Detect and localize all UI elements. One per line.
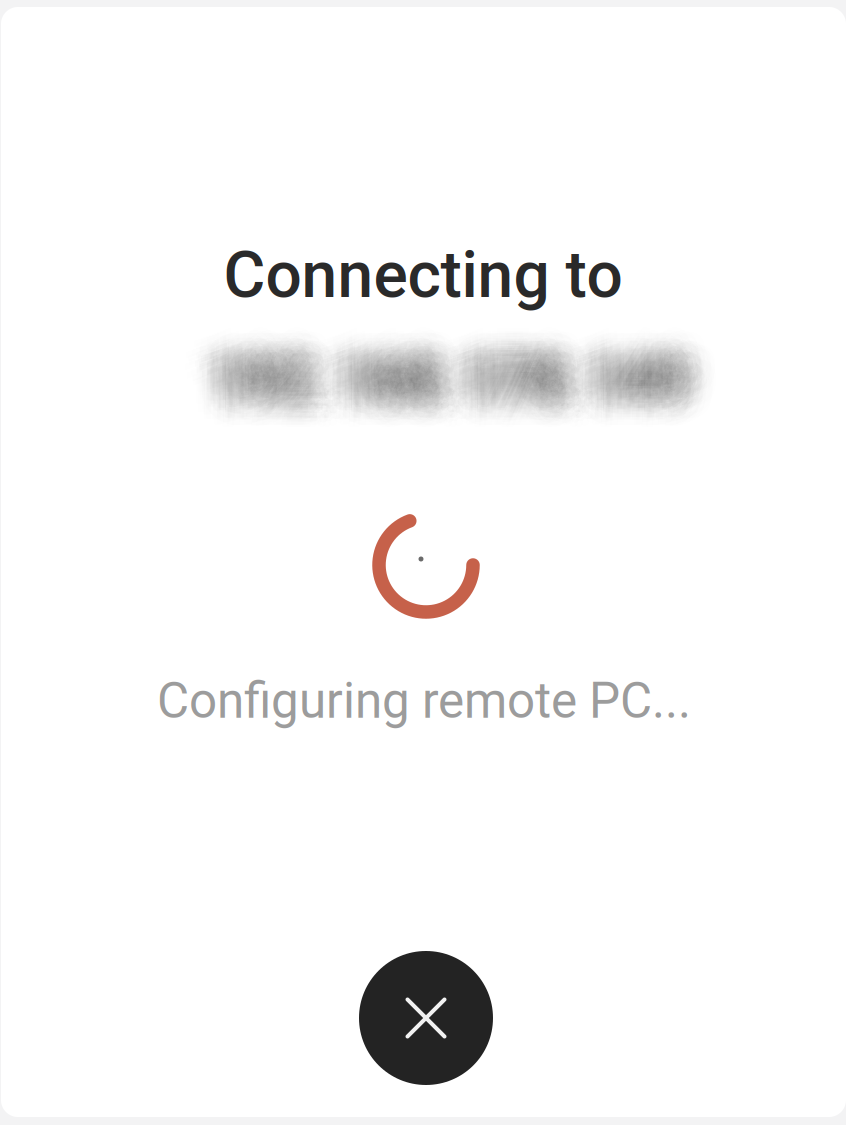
staticText: 192.168.178.149: [187, 355, 673, 430]
staticText: 192.168.178.149: [231, 369, 717, 444]
staticText: 192.168.178.149: [202, 323, 688, 398]
staticText: 192.168.178.149: [205, 333, 691, 408]
staticText: 192.168.178.149: [167, 353, 653, 428]
staticText: 192.168.178.149: [196, 313, 682, 388]
staticText: 192.168.178.149: [190, 341, 676, 416]
staticText: 192.168.178.149: [190, 359, 676, 434]
staticText: 192.168.178.149: [232, 357, 718, 432]
staticText: 192.168.178.149: [228, 378, 714, 453]
staticText: 192.168.178.149: [184, 311, 670, 386]
staticText: 192.168.178.149: [183, 369, 669, 444]
staticText: 192.168.178.149: [208, 337, 694, 412]
staticText: 192.168.178.149: [249, 332, 735, 407]
staticText: 192.168.178.149: [178, 347, 664, 422]
staticText: 192.168.178.149: [169, 331, 655, 406]
staticText: 192.168.178.149: [222, 340, 708, 415]
staticText: 192.168.178.149: [230, 354, 716, 429]
staticText: 192.168.178.149: [226, 308, 712, 383]
staticText: 192.168.178.149: [212, 347, 698, 422]
staticText: 192.168.178.149: [196, 360, 682, 435]
staticText: 192.168.178.149: [202, 341, 688, 416]
staticText: 192.168.178.149: [229, 331, 715, 406]
staticText: 192.168.178.149: [222, 319, 708, 394]
staticText: 192.168.178.149: [194, 344, 680, 419]
staticText: 192.168.178.149: [207, 314, 693, 389]
staticText: 192.168.178.149: [194, 301, 680, 376]
staticText: 192.168.178.149: [229, 359, 715, 434]
button[interactable]: Cancel connection: [359, 951, 493, 1085]
staticText: 192.168.178.149: [216, 320, 702, 395]
staticText: 192.168.178.149: [200, 358, 686, 433]
staticText: 192.168.178.149: [244, 349, 730, 424]
staticText: 192.168.178.149: [195, 373, 681, 448]
staticText: 192.168.178.149: [167, 337, 653, 412]
staticText: 192.168.178.149: [179, 357, 665, 432]
staticText: 192.168.178.149: [203, 371, 689, 446]
staticText: 192.168.178.149: [240, 341, 726, 416]
staticText: 192.168.178.149: [222, 363, 708, 438]
staticText: 192.168.178.149: [203, 380, 689, 455]
staticText: 192.168.178.149: [197, 368, 683, 443]
staticText: 192.168.178.149: [222, 316, 708, 391]
staticText: 192.168.178.149: [206, 306, 692, 381]
staticText: 192.168.178.149: [191, 333, 677, 408]
staticText: 192.168.178.149: [181, 332, 667, 407]
staticText: 192.168.178.149: [182, 327, 668, 402]
staticText: 192.168.178.149: [208, 352, 694, 427]
staticText: 192.168.178.149: [219, 327, 705, 402]
staticText: 192.168.178.149: [220, 359, 706, 434]
staticText: 192.168.178.149: [246, 332, 732, 407]
staticText: 192.168.178.149: [189, 364, 675, 439]
staticText: 192.168.178.149: [231, 321, 717, 396]
staticText: 192.168.178.149: [232, 362, 718, 437]
staticText: 192.168.178.149: [250, 336, 736, 411]
staticText: 192.168.178.149: [224, 350, 710, 425]
staticText: 192.168.178.149: [183, 323, 669, 398]
staticText: 192.168.178.149: [165, 335, 651, 410]
staticText: 192.168.178.149: [172, 343, 658, 418]
staticText: 192.168.178.149: [233, 346, 719, 421]
staticText: 192.168.178.149: [215, 337, 701, 412]
staticText: 192.168.178.149: [225, 338, 711, 413]
staticText: 192.168.178.149: [175, 371, 661, 446]
staticText: 192.168.178.149: [243, 358, 729, 433]
staticText: 192.168.178.149: [229, 363, 715, 438]
staticText: 192.168.178.149: [174, 357, 660, 432]
staticText: 192.168.178.149: [180, 361, 666, 436]
staticText: 192.168.178.149: [243, 320, 729, 395]
staticText: 192.168.178.149: [179, 344, 665, 419]
staticText: 192.168.178.149: [196, 336, 682, 411]
staticText: 192.168.178.149: [185, 318, 671, 393]
staticText: 192.168.178.149: [171, 318, 657, 393]
staticText: 192.168.178.149: [242, 323, 728, 398]
staticText: 192.168.178.149: [188, 321, 674, 396]
staticText: 192.168.178.149: [225, 310, 711, 385]
staticText: 192.168.178.149: [174, 335, 660, 410]
staticText: 192.168.178.149: [210, 310, 696, 385]
staticText: 192.168.178.149: [196, 308, 682, 383]
staticText: 192.168.178.149: [238, 348, 724, 423]
staticText: 192.168.178.149: [189, 378, 675, 453]
staticText: 192.168.178.149: [214, 300, 700, 375]
staticText: 192.168.178.149: [191, 324, 677, 399]
staticText: 192.168.178.149: [194, 341, 680, 416]
staticText: 192.168.178.149: [179, 312, 665, 387]
staticText: 192.168.178.149: [236, 353, 722, 428]
staticText: 192.168.178.149: [185, 312, 671, 387]
staticText: 192.168.178.149: [224, 372, 710, 447]
staticText: 192.168.178.149: [210, 376, 696, 451]
staticText: 192.168.178.149: [167, 339, 653, 414]
staticText: 192.168.178.149: [203, 312, 689, 387]
staticText: 192.168.178.149: [195, 328, 681, 403]
staticText: 192.168.178.149: [234, 322, 720, 397]
staticText: 192.168.178.149: [225, 328, 711, 403]
staticText: 192.168.178.149: [202, 376, 688, 451]
staticText: 192.168.178.149: [240, 337, 726, 412]
staticText: 192.168.178.149: [175, 365, 661, 440]
staticText: 192.168.178.149: [207, 376, 693, 451]
staticText: 192.168.178.149: [229, 304, 715, 379]
staticText: 192.168.178.149: [223, 381, 709, 456]
staticText: 192.168.178.149: [184, 365, 670, 440]
staticText: 192.168.178.149: [222, 349, 708, 424]
staticText: 192.168.178.149: [205, 367, 691, 442]
